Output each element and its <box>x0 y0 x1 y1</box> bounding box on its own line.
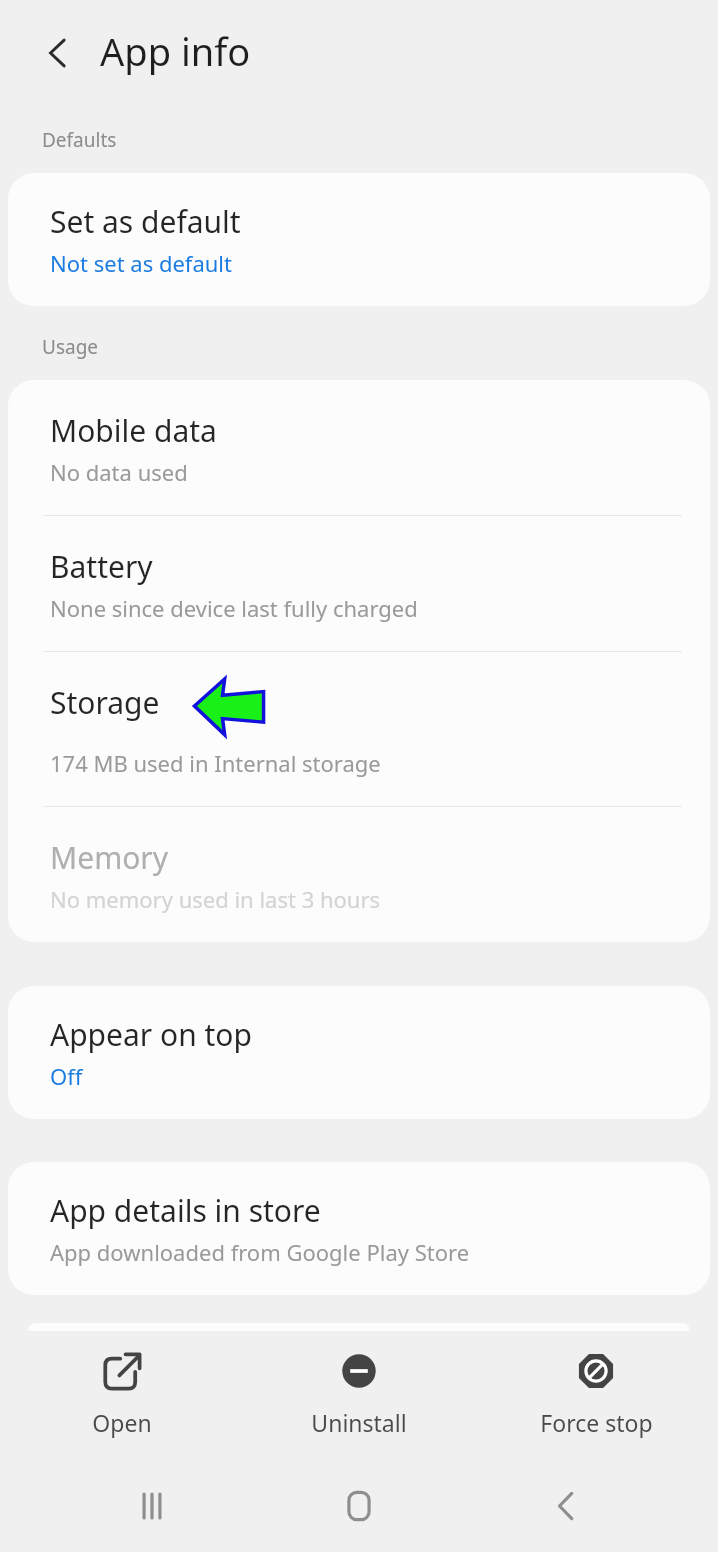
button[interactable]: Force stop <box>481 1343 711 1444</box>
staticText: Open <box>92 1407 152 1438</box>
staticText: Mobile data <box>50 410 217 451</box>
button[interactable]: Set as default <box>8 173 710 306</box>
button[interactable]: Recent apps <box>97 1460 207 1552</box>
staticText: App downloaded from Google Play Store <box>50 1237 470 1267</box>
button[interactable]: Back <box>22 17 94 89</box>
button[interactable]: Memory <box>8 807 710 942</box>
button[interactable]: Storage <box>8 652 710 806</box>
staticText: None since device last fully charged <box>50 593 418 623</box>
button[interactable]: Uninstall <box>244 1343 474 1444</box>
button[interactable]: App details in store <box>8 1162 710 1295</box>
staticText: Battery <box>50 546 153 587</box>
button[interactable]: Appear on top <box>8 986 710 1119</box>
staticText: App info <box>100 25 251 77</box>
button[interactable]: Battery <box>8 516 710 651</box>
button[interactable]: Mobile data <box>8 380 710 515</box>
staticText: Not set as default <box>50 248 232 278</box>
staticText: Set as default <box>50 201 241 242</box>
staticText: App details in store <box>50 1190 321 1231</box>
staticText: Off <box>50 1061 83 1091</box>
button[interactable]: Back <box>511 1460 621 1552</box>
staticText: Storage <box>50 682 160 723</box>
staticText: Defaults <box>42 127 117 153</box>
staticText: Uninstall <box>311 1407 407 1438</box>
staticText: Force stop <box>540 1407 653 1438</box>
staticText: No memory used in last 3 hours <box>50 884 381 914</box>
button[interactable]: Open <box>7 1343 237 1444</box>
staticText: Appear on top <box>50 1014 252 1055</box>
button[interactable]: Home <box>304 1460 414 1552</box>
staticText: No data used <box>50 457 188 487</box>
staticText: Memory <box>50 837 169 878</box>
staticText: Usage <box>42 334 99 360</box>
staticText: 174 MB used in Internal storage <box>50 748 381 778</box>
